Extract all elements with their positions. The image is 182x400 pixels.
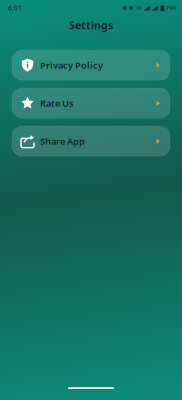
staticText: Settings xyxy=(69,18,113,32)
staticText: 6:01 xyxy=(8,4,22,12)
staticText: Privacy Policy xyxy=(40,59,103,71)
staticText: 74% xyxy=(166,4,176,12)
button[interactable]: Privacy Policy xyxy=(12,50,170,80)
staticText: LTE xyxy=(135,5,141,11)
button[interactable]: Rate Us xyxy=(12,88,170,118)
button[interactable]: Share App xyxy=(12,126,170,156)
staticText: Share App xyxy=(40,135,85,147)
staticText: Rate Us xyxy=(40,97,74,109)
